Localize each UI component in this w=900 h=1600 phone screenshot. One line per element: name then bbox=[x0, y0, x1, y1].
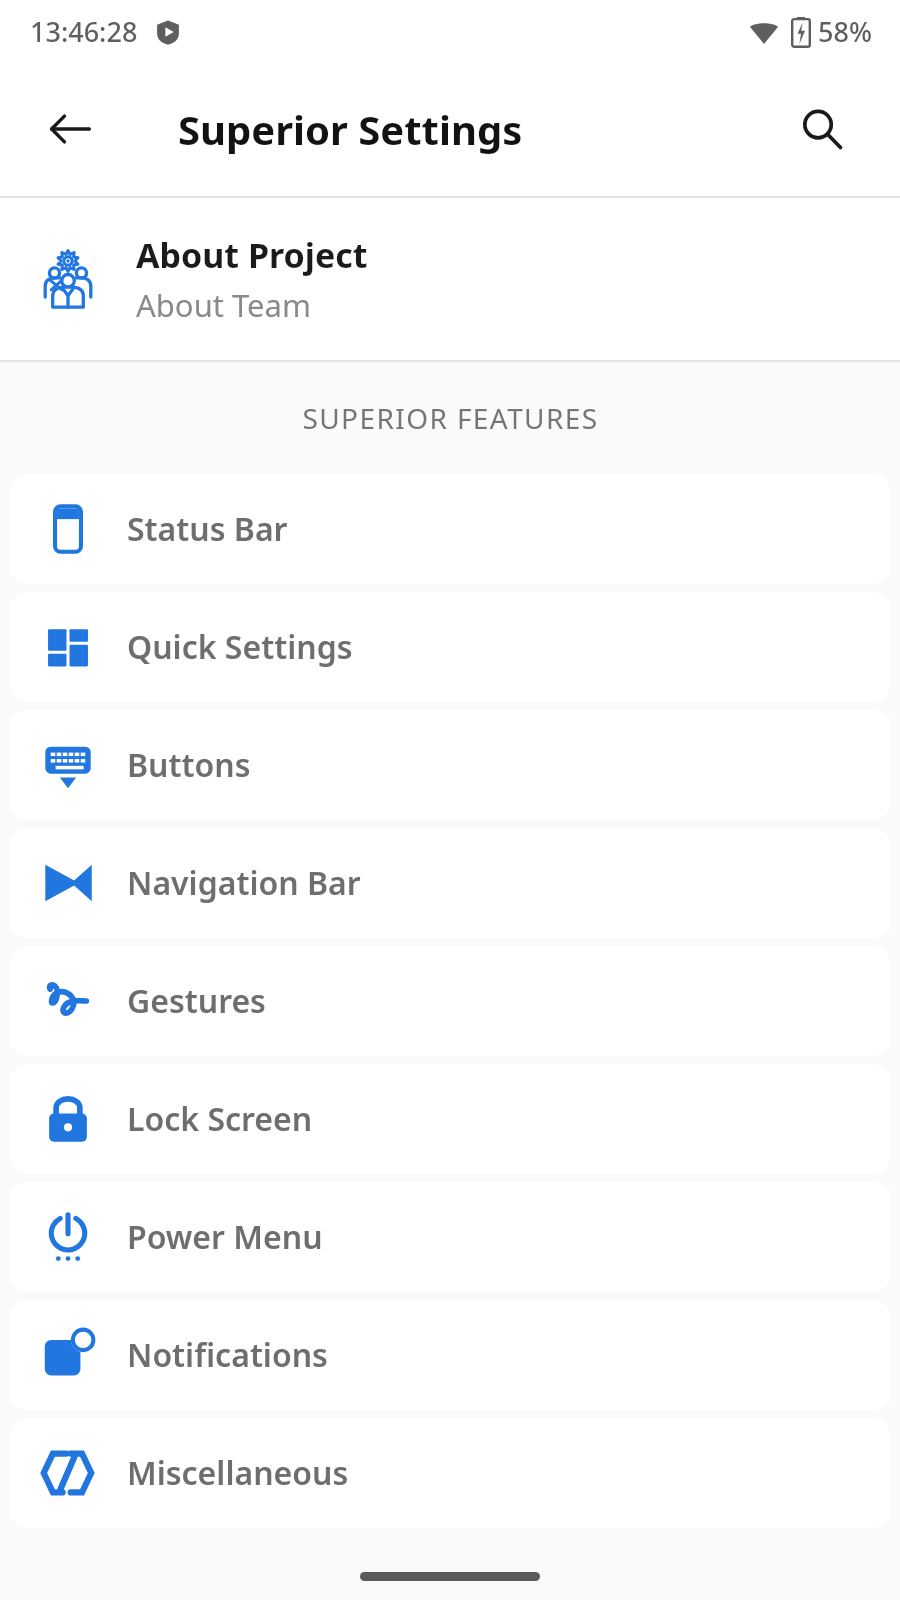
staticText: Status Bar bbox=[127, 507, 288, 551]
button[interactable]: About Project bbox=[0, 198, 900, 360]
staticText: Miscellaneous bbox=[127, 1451, 349, 1495]
staticText: Gestures bbox=[127, 979, 266, 1023]
button[interactable]: Buttons bbox=[9, 710, 891, 820]
button[interactable]: Search bbox=[780, 87, 864, 171]
button[interactable]: Back bbox=[28, 87, 112, 171]
staticText: Quick Settings bbox=[127, 625, 353, 669]
button[interactable]: Notifications bbox=[9, 1300, 891, 1410]
button[interactable]: Gestures bbox=[9, 946, 891, 1056]
button[interactable]: Miscellaneous bbox=[9, 1418, 891, 1528]
staticText: Lock Screen bbox=[127, 1097, 313, 1141]
button[interactable]: Power Menu bbox=[9, 1182, 891, 1292]
button[interactable]: Status Bar bbox=[9, 474, 891, 584]
button[interactable]: Navigation Bar bbox=[9, 828, 891, 938]
staticText: SUPERIOR FEATURES bbox=[302, 399, 599, 437]
staticText: Navigation Bar bbox=[127, 861, 361, 905]
staticText: Power Menu bbox=[127, 1215, 323, 1259]
staticText: Buttons bbox=[127, 743, 251, 787]
button[interactable]: Quick Settings bbox=[9, 592, 891, 702]
button[interactable]: Lock Screen bbox=[9, 1064, 891, 1174]
staticText: About Team bbox=[136, 284, 311, 326]
staticText: 58% bbox=[818, 13, 872, 50]
staticText: 13:46:28 bbox=[30, 13, 138, 50]
staticText: About Project bbox=[136, 232, 368, 278]
staticText: Notifications bbox=[127, 1333, 328, 1377]
staticText: Superior Settings bbox=[178, 102, 523, 156]
